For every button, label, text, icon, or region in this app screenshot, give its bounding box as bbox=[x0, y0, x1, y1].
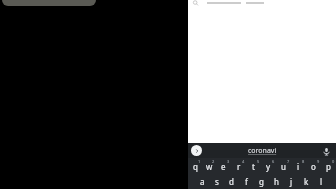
button[interactable]: p bbox=[321, 158, 336, 174]
staticText: p bbox=[326, 161, 331, 172]
staticText: t bbox=[252, 161, 255, 172]
button[interactable]: e bbox=[216, 158, 231, 174]
staticText: 0 bbox=[332, 159, 335, 164]
button[interactable]: q bbox=[188, 158, 202, 174]
button[interactable]: coronavi bbox=[242, 144, 283, 158]
button[interactable]: w bbox=[202, 158, 216, 174]
button[interactable]: Voice input bbox=[320, 145, 332, 157]
button[interactable]: s bbox=[209, 174, 224, 189]
button[interactable]: g bbox=[254, 174, 269, 189]
button[interactable] bbox=[188, 0, 336, 6]
button[interactable]: f bbox=[239, 174, 254, 189]
button[interactable]: k bbox=[299, 174, 314, 189]
staticText: d bbox=[229, 176, 234, 187]
staticText: h bbox=[274, 176, 279, 187]
staticText: 5 bbox=[257, 159, 260, 164]
staticText: k bbox=[304, 176, 309, 187]
staticText: 2 bbox=[212, 159, 215, 164]
staticText: r bbox=[237, 161, 241, 172]
button[interactable]: o bbox=[306, 158, 321, 174]
button[interactable]: d bbox=[224, 174, 239, 189]
staticText: 3 bbox=[227, 159, 230, 164]
staticText: s bbox=[215, 176, 219, 187]
staticText: i bbox=[297, 161, 300, 172]
staticText: coronavi bbox=[248, 146, 277, 156]
staticText: 6 bbox=[272, 159, 275, 164]
button[interactable]: y bbox=[261, 158, 276, 174]
button[interactable]: l bbox=[314, 174, 329, 189]
staticText: f bbox=[245, 176, 248, 187]
staticText: w bbox=[206, 161, 213, 172]
staticText: g bbox=[259, 176, 264, 187]
button[interactable]: i bbox=[291, 158, 306, 174]
button[interactable]: r bbox=[231, 158, 246, 174]
staticText: 7 bbox=[287, 159, 290, 164]
staticText: 9 bbox=[317, 159, 320, 164]
staticText: 1 bbox=[198, 159, 201, 164]
button[interactable]: a bbox=[195, 174, 209, 189]
staticText: e bbox=[221, 161, 226, 172]
button[interactable]: j bbox=[284, 174, 299, 189]
staticText: 4 bbox=[242, 159, 245, 164]
staticText: l bbox=[320, 176, 323, 187]
button[interactable]: Expand suggestions bbox=[191, 145, 202, 156]
staticText: y bbox=[266, 161, 271, 172]
staticText: j bbox=[290, 176, 293, 187]
staticText: o bbox=[311, 161, 316, 172]
staticText: q bbox=[193, 161, 198, 172]
button[interactable]: t bbox=[246, 158, 261, 174]
staticText: 8 bbox=[302, 159, 305, 164]
staticText: u bbox=[281, 161, 286, 172]
button[interactable]: u bbox=[276, 158, 291, 174]
button[interactable]: h bbox=[269, 174, 284, 189]
staticText: a bbox=[200, 176, 205, 187]
